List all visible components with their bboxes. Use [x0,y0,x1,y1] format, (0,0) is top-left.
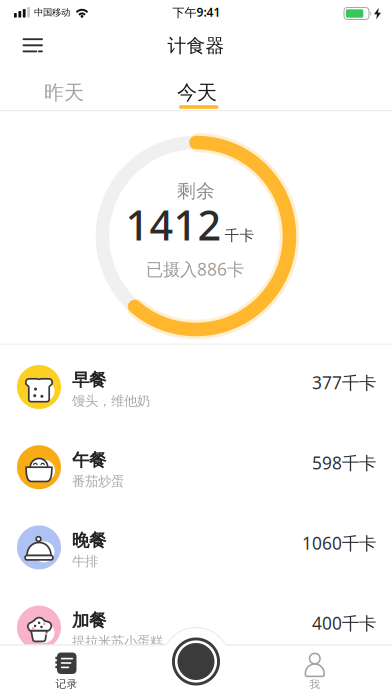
staticText: 我 [309,678,320,691]
staticText: 晚餐 [72,530,106,551]
staticText: 598千卡 [312,451,376,474]
staticText: 午餐 [72,450,106,471]
staticText: 下午9:41 [172,4,220,20]
staticText: 已摄入886卡 [146,257,244,280]
staticText: 今天 [177,80,217,105]
staticText: 400千卡 [312,612,376,635]
staticText: 1412 [125,197,221,252]
staticText: 记录 [55,677,77,690]
staticText: 377千卡 [312,371,376,394]
staticText: 计食器 [167,34,224,57]
staticText: 加餐 [72,610,106,631]
staticText: 提拉米苏小蛋糕 [72,633,163,650]
staticText: 番茄炒蛋 [72,473,124,489]
staticText: 早餐 [72,369,106,391]
staticText: 牛排 [72,553,98,570]
staticText: 馒头，维他奶 [72,393,150,409]
staticText: 千卡 [224,227,254,245]
staticText: 昨天 [44,80,84,105]
staticText: 1060千卡 [302,531,376,554]
staticText: 中国移动 [34,7,70,18]
staticText: 剩余 [177,179,215,202]
